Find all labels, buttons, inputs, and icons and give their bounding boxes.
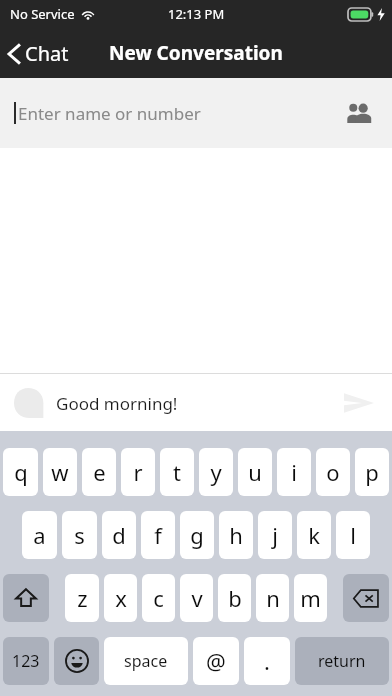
staticText: .: [264, 646, 270, 676]
button[interactable]: return: [295, 637, 389, 685]
staticText: New Conversation: [109, 40, 283, 66]
button[interactable]: f: [141, 511, 175, 559]
staticText: c: [153, 583, 164, 613]
staticText: f: [154, 520, 162, 550]
staticText: @: [206, 646, 226, 676]
staticText: b: [228, 583, 242, 613]
button[interactable]: j: [258, 511, 292, 559]
button[interactable]: m: [294, 574, 327, 622]
staticText: 12:13 PM: [168, 5, 225, 23]
staticText: q: [14, 457, 28, 487]
button[interactable]: x: [104, 574, 137, 622]
staticText: space: [124, 650, 168, 672]
staticText: 123: [12, 650, 40, 672]
staticText: r: [133, 457, 143, 487]
staticText: t: [173, 457, 181, 487]
button[interactable]: a: [22, 511, 57, 559]
button[interactable]: Attach: [14, 388, 44, 418]
staticText: l: [350, 520, 356, 550]
staticText: Good morning!: [56, 392, 178, 415]
staticText: v: [191, 583, 203, 613]
button[interactable]: @: [193, 637, 239, 685]
button[interactable]: e: [82, 448, 116, 496]
button[interactable]: c: [142, 574, 175, 622]
staticText: No Service: [10, 5, 75, 23]
staticText: w: [51, 457, 69, 487]
staticText: g: [190, 520, 204, 550]
staticText: i: [291, 457, 297, 487]
button[interactable]: Chat: [0, 34, 77, 73]
staticText: k: [308, 520, 320, 550]
staticText: a: [33, 520, 46, 550]
button[interactable]: h: [219, 511, 253, 559]
staticText: u: [248, 457, 262, 487]
button[interactable]: b: [218, 574, 251, 622]
button[interactable]: v: [180, 574, 213, 622]
button[interactable]: Emoji: [54, 637, 99, 685]
staticText: p: [365, 457, 379, 487]
staticText: x: [115, 583, 127, 613]
button[interactable]: w: [43, 448, 77, 496]
staticText: e: [93, 457, 106, 487]
staticText: h: [229, 520, 243, 550]
button[interactable]: t: [160, 448, 194, 496]
button[interactable]: z: [65, 574, 99, 622]
button[interactable]: q: [3, 448, 38, 496]
staticText: z: [77, 583, 88, 613]
staticText: j: [272, 520, 278, 550]
button[interactable]: Shift: [3, 574, 49, 622]
staticText: n: [266, 583, 280, 613]
button[interactable]: d: [102, 511, 136, 559]
button[interactable]: o: [316, 448, 350, 496]
button[interactable]: r: [121, 448, 155, 496]
staticText: return: [318, 650, 366, 672]
staticText: Chat: [25, 40, 69, 67]
button[interactable]: i: [277, 448, 311, 496]
button[interactable]: g: [180, 511, 214, 559]
button[interactable]: space: [104, 637, 188, 685]
button[interactable]: n: [256, 574, 289, 622]
button[interactable]: .: [244, 637, 290, 685]
button[interactable]: y: [199, 448, 233, 496]
button[interactable]: p: [355, 448, 389, 496]
button[interactable]: Backspace: [343, 574, 389, 622]
button[interactable]: 123: [3, 637, 49, 685]
button[interactable]: Enter name or number: [0, 78, 392, 148]
button[interactable]: u: [238, 448, 272, 496]
button[interactable]: Choose contact: [340, 97, 378, 129]
button[interactable]: s: [62, 511, 97, 559]
staticText: d: [112, 520, 126, 550]
button[interactable]: Send: [340, 388, 378, 418]
button[interactable]: l: [336, 511, 370, 559]
staticText: y: [210, 457, 222, 487]
staticText: o: [326, 457, 340, 487]
staticText: m: [300, 583, 321, 613]
staticText: s: [74, 520, 85, 550]
button[interactable]: k: [297, 511, 331, 559]
staticText: Enter name or number: [18, 102, 201, 125]
